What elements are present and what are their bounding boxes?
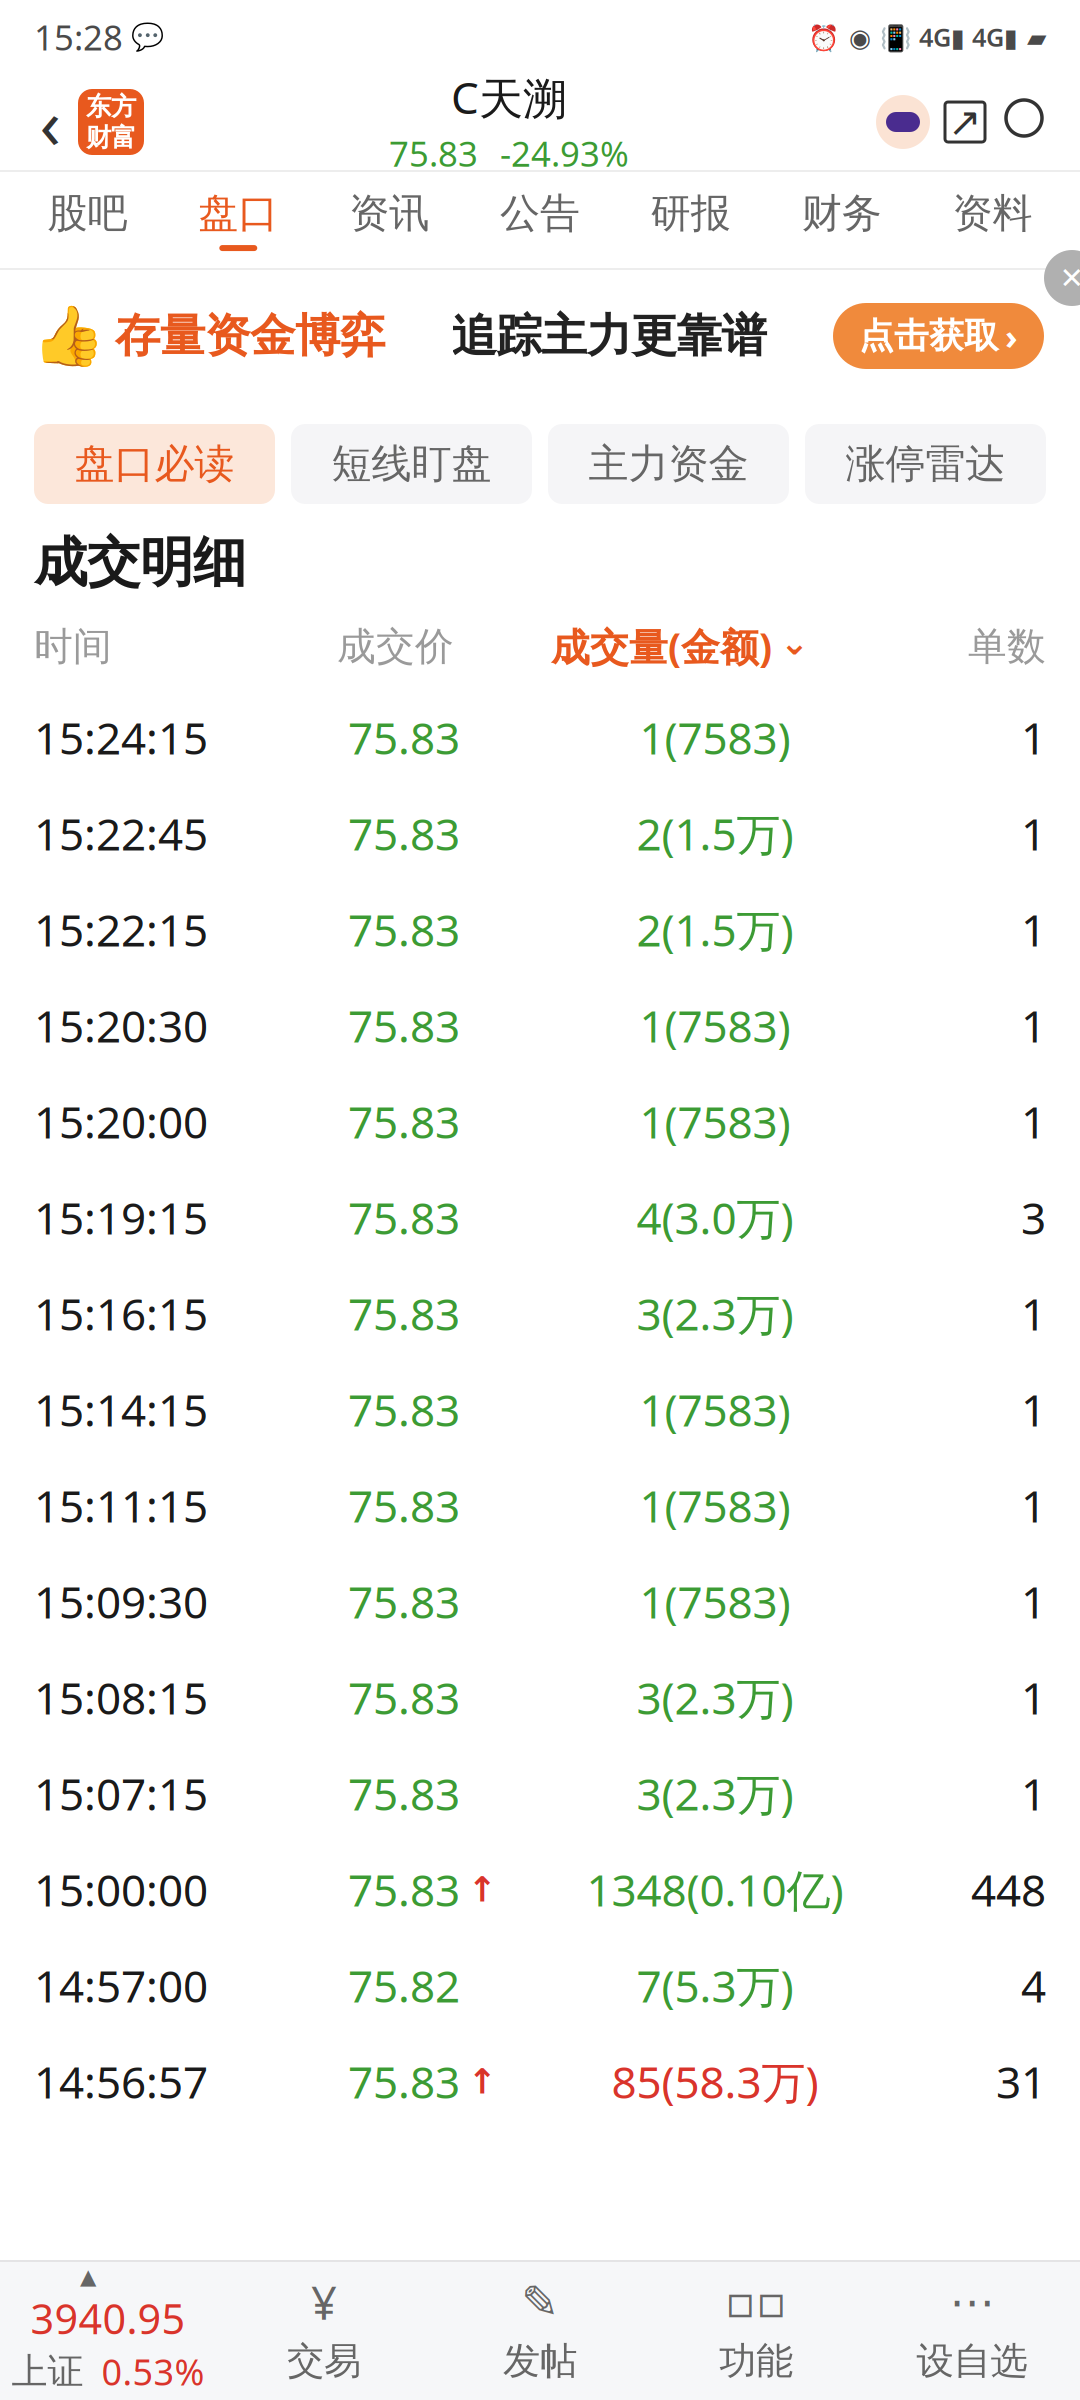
staticText: ↑ [467,2062,496,2101]
staticText: 功能 [719,2338,793,2384]
staticText: 公告 [500,189,580,238]
button[interactable]: 15:07:15 [0,1745,1080,1841]
staticText: 15:22:45 [34,804,208,863]
staticText: 财务 [802,189,882,238]
button[interactable]: 15:08:15 [0,1649,1080,1745]
staticText: 75.82 [348,1956,460,2015]
staticText: 75.83 [348,708,460,767]
button[interactable]: 15:22:45 [0,785,1080,881]
button[interactable]: Back [22,82,78,162]
button[interactable]: 盘口 [163,172,314,268]
button[interactable]: 涨停雷达 [805,424,1046,504]
button[interactable]: 15:14:15 [0,1361,1080,1457]
staticText: 成交量(金额) [551,621,772,672]
button[interactable]: 14:57:00 [0,1937,1080,2033]
button[interactable]: 15:19:15 [0,1169,1080,1265]
button[interactable]: 研报 [615,172,766,268]
staticText: 1(7583) [639,996,790,1055]
button[interactable]: 14:56:57 [0,2033,1080,2129]
button[interactable]: 股吧 [12,172,163,268]
staticText: ▫▫ [725,2276,787,2328]
button[interactable]: 15:24:15 [0,689,1080,785]
staticText: 1 [1021,1668,1046,1727]
button[interactable]: ¥ [216,2260,432,2400]
button[interactable]: 15:11:15 [0,1457,1080,1553]
staticText: 1(7583) [639,1476,790,1535]
staticText: 财富 [86,122,136,153]
staticText: 发帖 [503,2338,577,2384]
button[interactable]: 15:22:15 [0,881,1080,977]
staticText: 75.83 [348,1860,460,1919]
staticText: 追踪主力更靠谱 [451,308,766,364]
button[interactable]: 15:09:30 [0,1553,1080,1649]
staticText: 3 [1021,1188,1046,1247]
staticText: 4 [1021,1956,1046,2015]
staticText: ✎ [521,2276,559,2328]
staticText: 单数 [968,623,1046,670]
button[interactable]: Close ad [1044,270,1080,306]
staticText: C天溯 [451,68,567,126]
button[interactable]: 资料 [917,172,1068,268]
button[interactable]: 15:20:00 [0,1073,1080,1169]
staticText: ⏰ ◉ 📳 4G▮ 4G▮ ▰ [808,20,1046,54]
staticText: 时间 [34,623,112,670]
button[interactable]: 15:20:30 [0,977,1080,1073]
staticText: 2(1.5万) [636,804,793,863]
staticText: 交易 [287,2338,361,2384]
button[interactable]: 短线盯盘 [291,424,532,504]
staticText: 75.83 [348,1188,460,1247]
staticText: 设自选 [916,2338,1027,2384]
button[interactable]: 15:16:15 [0,1265,1080,1361]
staticText: 👍 [32,302,105,369]
staticText: 75.83 [348,1668,460,1727]
staticText: 资讯 [349,189,429,238]
staticText: 3(2.3万) [636,1668,793,1727]
button[interactable]: Share [932,89,998,155]
staticText: ‹ [39,76,60,168]
staticText: 75.83 [348,1572,460,1631]
staticText: 75.83 [348,1380,460,1439]
staticText: 股吧 [47,189,127,238]
button[interactable]: 公告 [465,172,615,268]
button[interactable]: ✎ [432,2260,648,2400]
button[interactable]: 资讯 [314,172,465,268]
button[interactable]: 主力资金 [548,424,789,504]
button[interactable]: ⋯ [864,2260,1080,2400]
button[interactable]: Shanghai Composite index [0,2260,216,2400]
button[interactable]: AI assistant [874,93,932,151]
staticText: 75.83 [348,804,460,863]
staticText: 1 [1021,1092,1046,1151]
button[interactable]: 成交量(金额) [551,621,809,672]
staticText: 盘口 [198,189,278,238]
staticText: 15:00:00 [34,1860,208,1919]
staticText: 成交价 [337,623,454,670]
staticText: 研报 [651,189,731,238]
button[interactable]: East Money home [78,89,144,155]
button[interactable]: Search [998,92,1058,152]
staticText: 存量资金博弈 [115,308,385,364]
staticText: ▲ [80,2264,96,2289]
staticText: 15:20:30 [34,996,208,1055]
staticText: -24.93% [500,130,629,176]
button[interactable]: 盘口必读 [34,424,275,504]
button[interactable]: ▫▫ [648,2260,864,2400]
button[interactable]: 财务 [766,172,917,268]
staticText: 1 [1021,1380,1046,1439]
staticText: 1 [1021,996,1046,1055]
staticText: 31 [996,2052,1046,2111]
staticText: 💬 [131,22,164,52]
button[interactable]: 15:00:00 [0,1841,1080,1937]
staticText: ¥ [311,2272,337,2332]
staticText: 涨停雷达 [845,439,1005,488]
staticText: 1 [1021,1476,1046,1535]
staticText: 85(58.3万) [611,2052,818,2111]
button[interactable]: 👍 [0,270,1080,402]
staticText: 1348(0.10亿) [586,1860,843,1919]
staticText: 1(7583) [639,1572,790,1631]
staticText: 15:20:00 [34,1092,208,1151]
staticText: › [1005,313,1018,359]
staticText: 15:09:30 [34,1572,208,1631]
staticText: 1 [1021,804,1046,863]
staticText: 2(1.5万) [636,900,793,959]
staticText: 3(2.3万) [636,1284,793,1343]
